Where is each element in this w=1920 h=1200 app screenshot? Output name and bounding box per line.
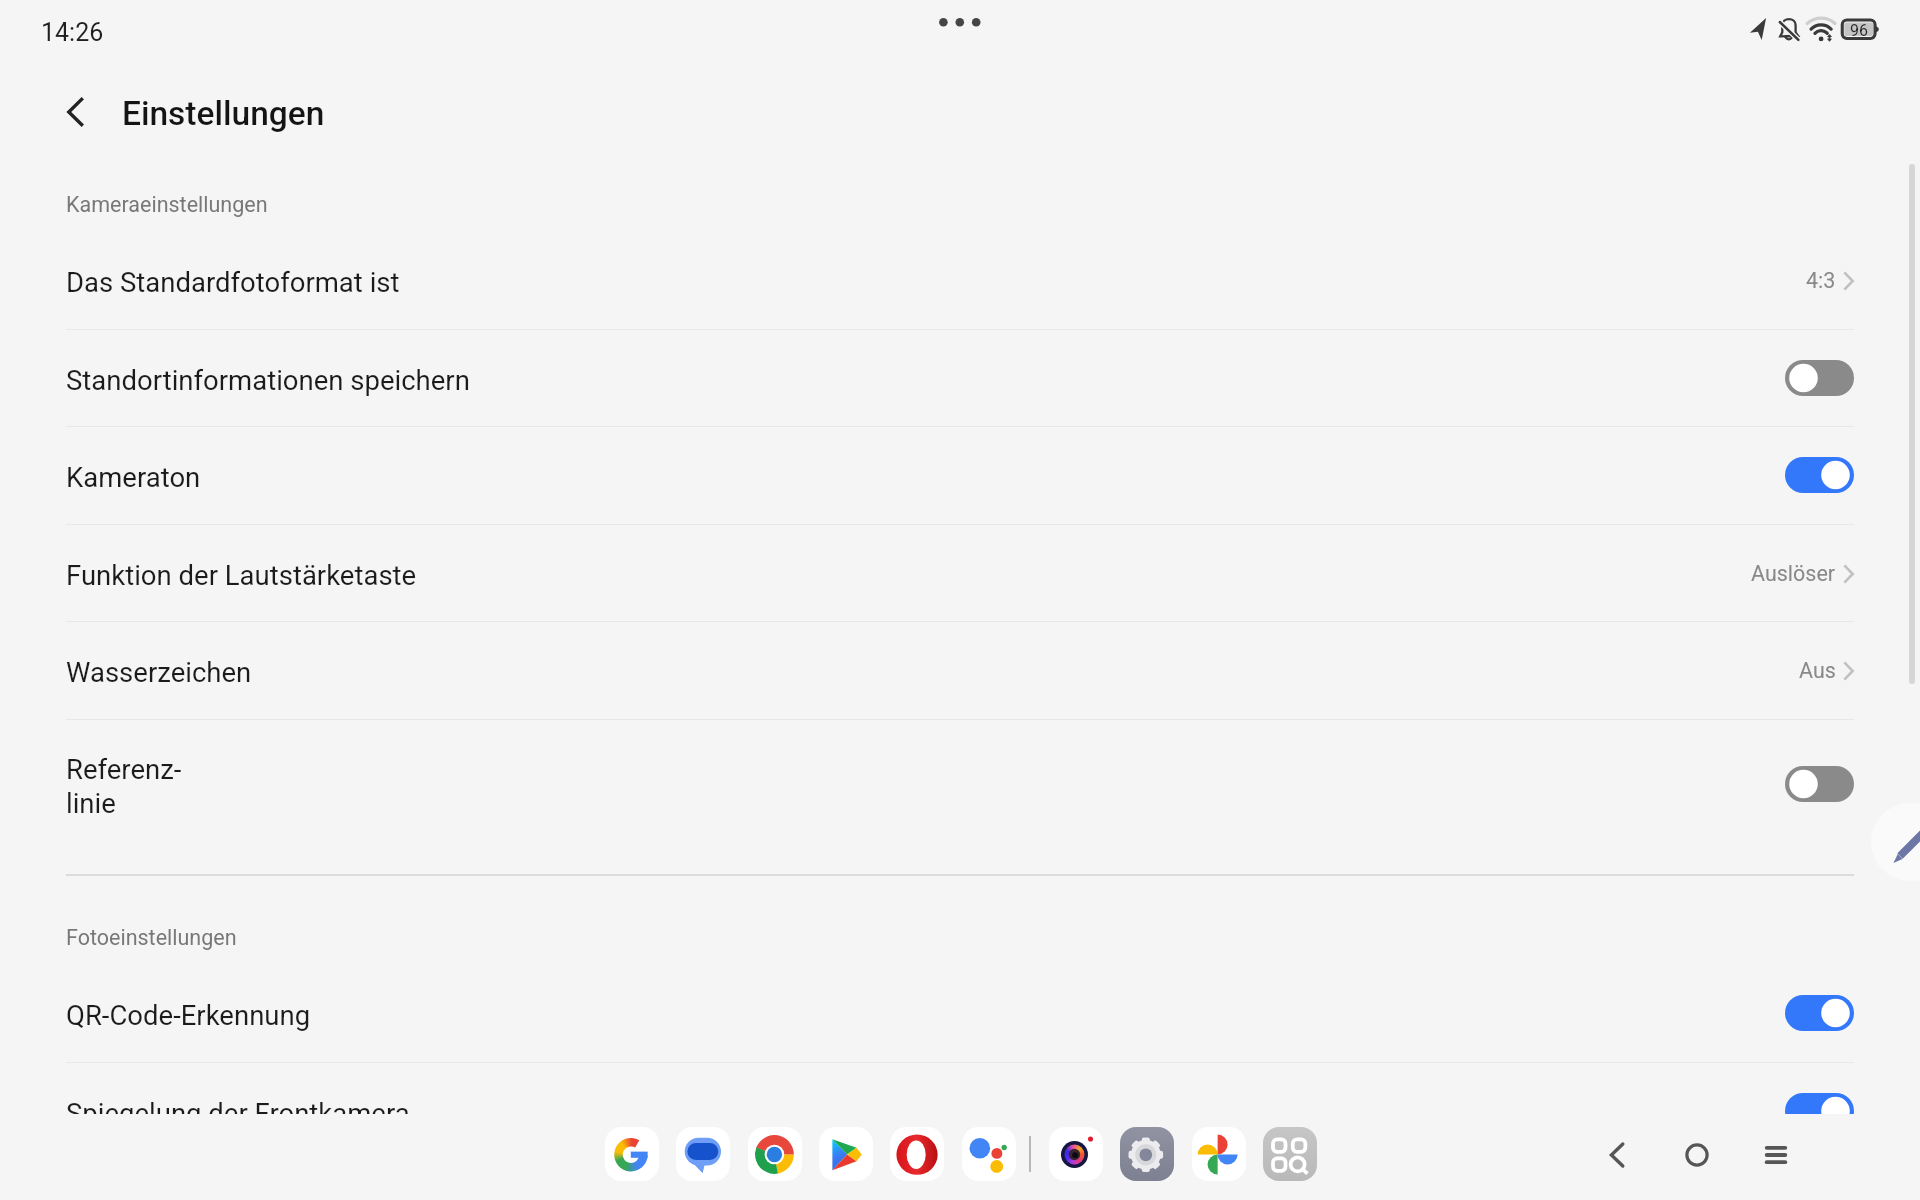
button[interactable]: Google [605,1127,659,1181]
staticText: QR-Code-Erkennung [66,999,311,1031]
button[interactable]: Settings [1120,1127,1174,1181]
staticText: Funktion der Lautstärketaste [66,559,417,591]
staticText: Auslöser [1751,561,1836,586]
staticText: Das Standardfotoformat ist [66,266,400,298]
button[interactable]: Stylus tools [1871,803,1920,881]
button[interactable]: Disabled [1785,360,1854,396]
staticText: 96 [1850,21,1868,40]
staticText: Kameraton [66,461,201,493]
button[interactable]: Play Store [819,1127,873,1181]
staticText: Kameraeinstellungen [66,192,268,217]
button[interactable]: Camera [1049,1127,1103,1181]
staticText: Wasserzeichen [66,656,252,688]
button[interactable]: Back [1590,1127,1646,1183]
button[interactable]: Funktion der Lautstärketaste [0,524,1920,622]
button[interactable]: Referenz- [0,719,1920,875]
button[interactable]: Photos [1192,1127,1246,1181]
button[interactable]: Spiegelung der Frontkamera [0,1062,1920,1114]
button[interactable]: Enabled [1785,457,1854,493]
button[interactable]: Messages [676,1127,730,1181]
staticText: Aus [1799,658,1836,683]
button[interactable]: All apps [1263,1127,1317,1181]
staticText: Fotoeinstellungen [66,925,237,950]
button[interactable]: Home [1669,1127,1725,1183]
button[interactable]: Enabled [1785,1093,1854,1114]
button[interactable]: Back [52,88,100,136]
button[interactable]: Recent apps [1748,1127,1804,1183]
button[interactable]: QR-Code-Erkennung [0,964,1920,1062]
staticText: Standortinformationen speichern [66,364,470,396]
staticText: linie [66,787,116,819]
staticText: Einstellungen [122,94,325,133]
button[interactable]: Das Standardfotoformat ist [0,231,1920,329]
button[interactable]: Enabled [1785,995,1854,1031]
button[interactable]: Disabled [1785,766,1854,802]
button[interactable]: Google Assistant [962,1127,1016,1181]
button[interactable]: Kameraton [0,426,1920,524]
button[interactable]: Opera [890,1127,944,1181]
button[interactable]: Standortinformationen speichern [0,329,1920,427]
staticText: Referenz- [66,753,182,785]
staticText: Spiegelung der Frontkamera [66,1097,410,1114]
button[interactable]: Chrome [748,1127,802,1181]
staticText: 14:26 [41,18,104,47]
button[interactable]: Wasserzeichen [0,621,1920,719]
staticText: 4:3 [1806,268,1836,293]
